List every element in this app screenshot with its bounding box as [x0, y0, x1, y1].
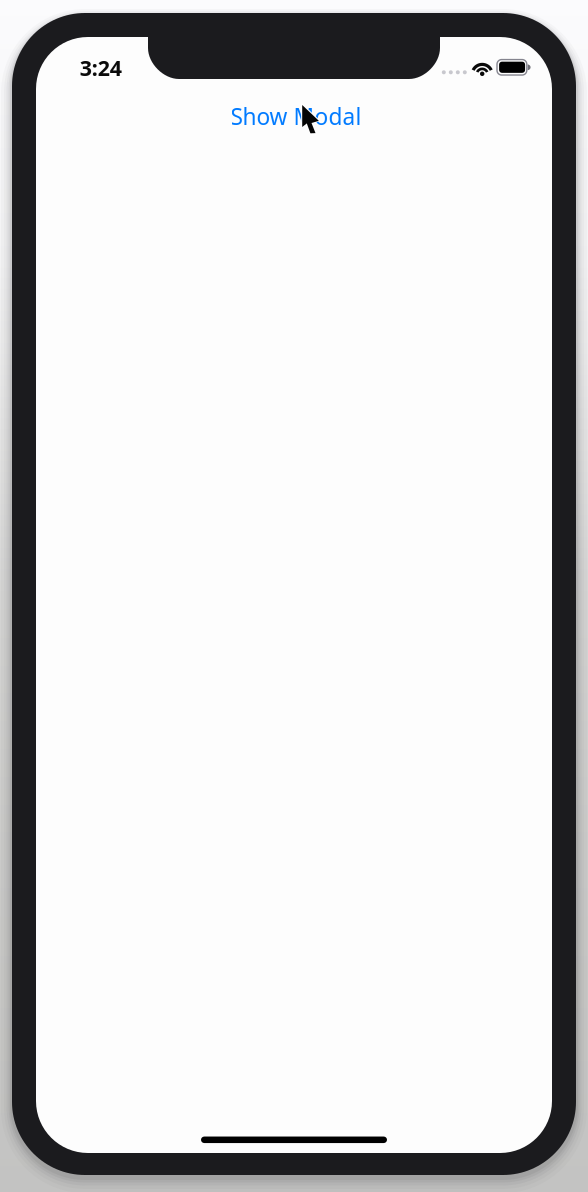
staticText: Show Modal: [230, 101, 361, 131]
button[interactable]: Show Modal: [230, 101, 362, 131]
staticText: 3:24: [80, 54, 122, 82]
